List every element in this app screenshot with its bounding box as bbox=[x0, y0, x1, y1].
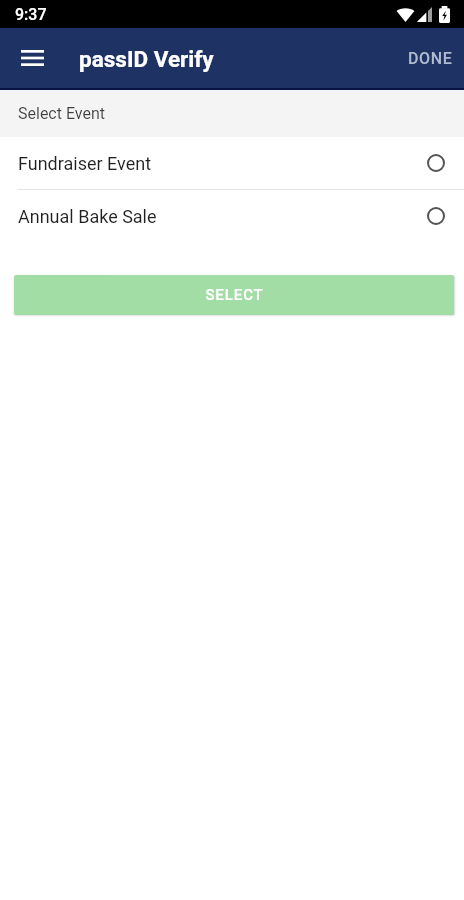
staticText: Fundraiser Event bbox=[18, 153, 427, 174]
staticText: passID Verify bbox=[79, 46, 214, 72]
button[interactable]: Annual Bake Sale bbox=[0, 190, 464, 242]
staticText: 9:37 bbox=[15, 5, 47, 24]
staticText: Select Event bbox=[18, 104, 106, 123]
button[interactable]: Fundraiser Event bbox=[0, 137, 464, 189]
button[interactable]: DONE bbox=[395, 34, 464, 82]
staticText: SELECT bbox=[205, 286, 264, 304]
staticText: DONE bbox=[408, 49, 453, 68]
button[interactable]: SELECT bbox=[14, 275, 454, 315]
button[interactable]: Open navigation menu bbox=[10, 36, 54, 80]
staticText: Annual Bake Sale bbox=[18, 206, 427, 227]
